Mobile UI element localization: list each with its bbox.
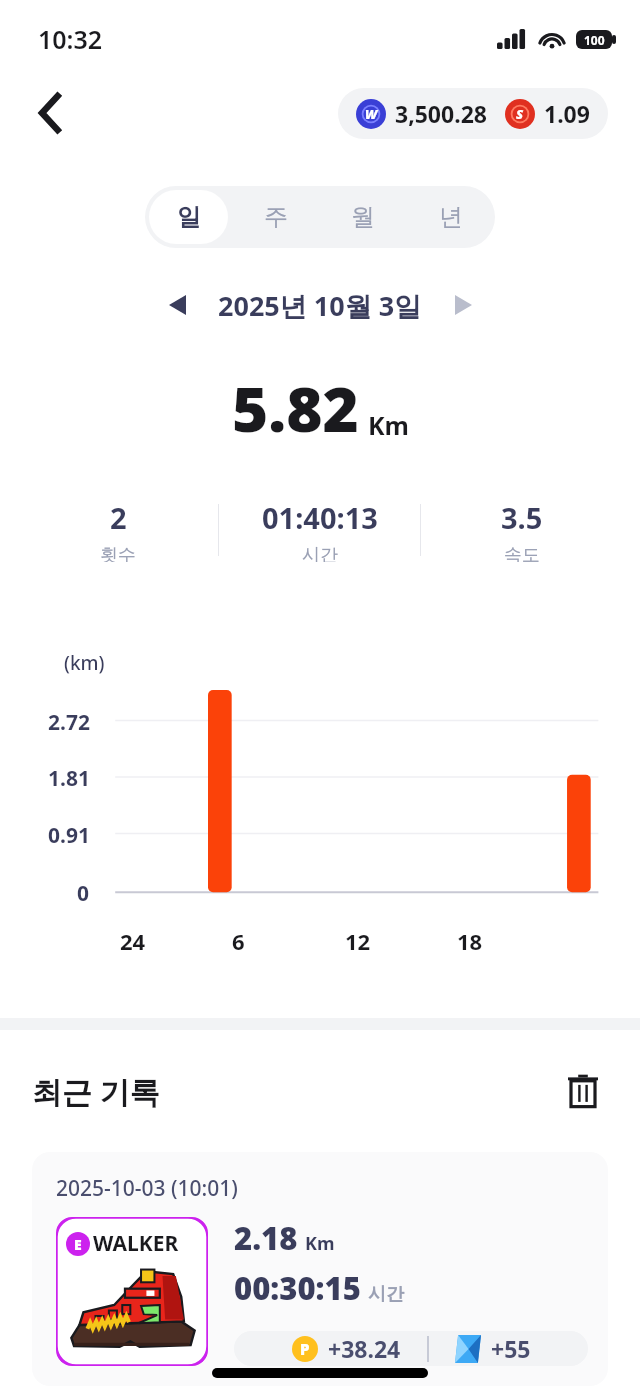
staticText: 2.18 bbox=[234, 1217, 298, 1259]
button[interactable]: 2025-10-03 (10:01) bbox=[32, 1152, 608, 1386]
staticText: 24 bbox=[120, 926, 146, 956]
button[interactable]: 일 bbox=[149, 190, 228, 244]
staticText: 월 bbox=[351, 202, 375, 232]
staticText: W bbox=[365, 105, 378, 123]
staticText: Km bbox=[305, 1231, 335, 1256]
staticText: 100 bbox=[584, 32, 605, 48]
staticText: 횟수 bbox=[100, 544, 136, 562]
staticText: 주 bbox=[264, 202, 288, 232]
staticText: 1.09 bbox=[544, 98, 590, 129]
staticText: 6 bbox=[232, 926, 245, 956]
staticText: 0.91 bbox=[48, 821, 90, 850]
staticText: 5.82 bbox=[232, 366, 359, 450]
button[interactable]: Next day bbox=[440, 282, 486, 328]
staticText: 속도 bbox=[504, 544, 540, 562]
staticText: S bbox=[516, 105, 524, 123]
staticText: 00:30:15 bbox=[234, 1267, 361, 1309]
staticText: 2.72 bbox=[48, 708, 90, 737]
button[interactable]: P bbox=[234, 1331, 588, 1366]
button[interactable]: Previous day bbox=[154, 282, 200, 328]
button[interactable]: W bbox=[338, 88, 608, 139]
staticText: 2025년 10월 3일 bbox=[218, 287, 422, 324]
staticText: 3,500.28 bbox=[395, 98, 487, 129]
button[interactable]: 년 bbox=[411, 190, 491, 244]
staticText: 년 bbox=[439, 202, 463, 232]
staticText: 2025-10-03 (10:01) bbox=[56, 1174, 238, 1203]
staticText: (km) bbox=[64, 650, 105, 676]
staticText: 01:40:13 bbox=[262, 498, 378, 537]
staticText: +38.24 bbox=[328, 1333, 401, 1364]
button[interactable]: Back bbox=[24, 87, 76, 139]
staticText: 1.81 bbox=[48, 764, 90, 793]
staticText: 최근 기록 bbox=[32, 1071, 160, 1112]
staticText: Km bbox=[368, 408, 409, 442]
staticText: 12 bbox=[345, 926, 371, 956]
staticText: P bbox=[300, 1339, 310, 1359]
staticText: 2 bbox=[110, 498, 127, 537]
staticText: E bbox=[74, 1235, 82, 1254]
staticText: WALKER bbox=[93, 1229, 179, 1258]
staticText: 시간 bbox=[302, 544, 338, 562]
staticText: 3.5 bbox=[501, 498, 543, 537]
button[interactable]: 주 bbox=[236, 190, 315, 244]
staticText: 10:32 bbox=[38, 22, 103, 56]
staticText: 18 bbox=[457, 926, 483, 956]
staticText: +55 bbox=[491, 1333, 531, 1364]
button[interactable]: 월 bbox=[323, 190, 403, 244]
staticText: 0 bbox=[77, 879, 90, 903]
staticText: 일 bbox=[177, 202, 201, 232]
button[interactable]: Delete records bbox=[558, 1066, 608, 1116]
staticText: 시간 bbox=[368, 1283, 404, 1306]
